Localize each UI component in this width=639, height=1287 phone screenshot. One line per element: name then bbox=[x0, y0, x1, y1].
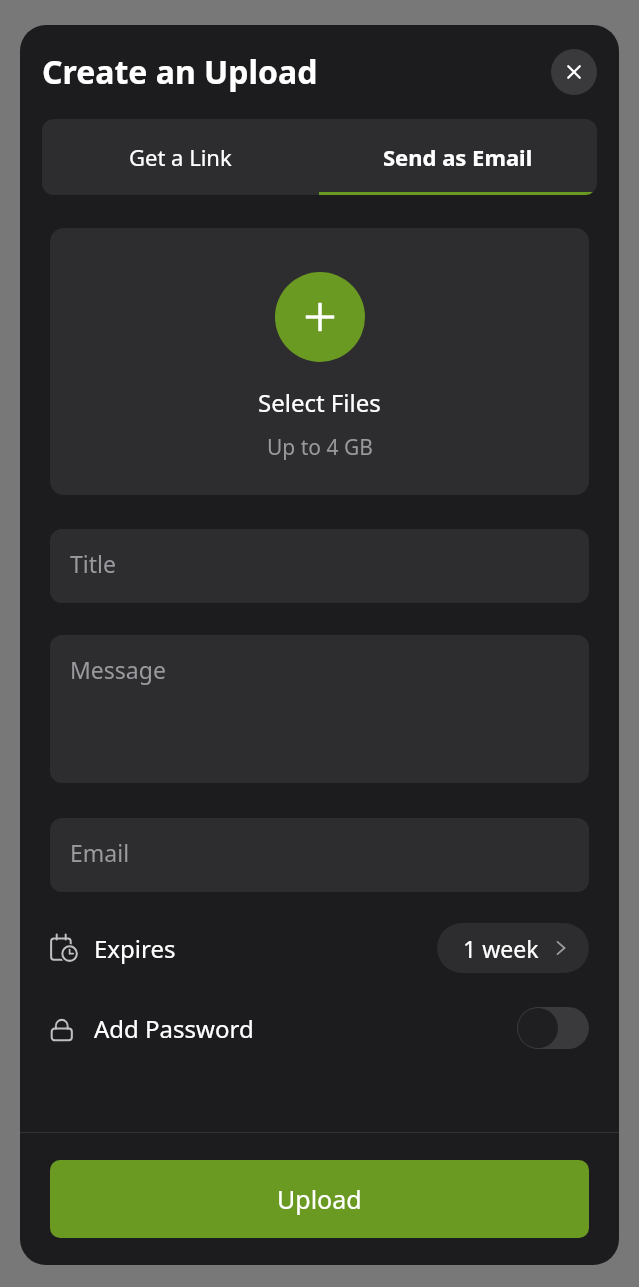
staticText: Message bbox=[70, 654, 166, 685]
button[interactable]: Upload bbox=[50, 1160, 589, 1238]
button[interactable]: Get a Link bbox=[42, 119, 319, 195]
staticText: Email bbox=[70, 837, 130, 868]
staticText: 1 week bbox=[463, 933, 539, 964]
staticText: Add Password bbox=[94, 1012, 254, 1045]
button[interactable]: Title bbox=[50, 529, 589, 603]
staticText: Send as Email bbox=[383, 142, 533, 172]
staticText: Upload bbox=[277, 1182, 362, 1216]
button[interactable]: Select Files bbox=[50, 228, 589, 495]
staticText: Expires bbox=[94, 932, 176, 965]
button[interactable]: Message bbox=[50, 635, 589, 783]
button[interactable]: 1 week bbox=[437, 923, 589, 973]
staticText: Get a Link bbox=[129, 142, 232, 172]
staticText: Title bbox=[70, 548, 116, 579]
button[interactable]: Add Password bbox=[20, 994, 619, 1062]
button[interactable]: Send as Email bbox=[319, 119, 597, 195]
button[interactable]: Expires bbox=[20, 914, 619, 982]
button[interactable]: Add Password toggle bbox=[517, 1007, 589, 1049]
button[interactable]: Close bbox=[551, 49, 597, 95]
staticText: Up to 4 GB bbox=[267, 433, 373, 462]
staticText: Create an Upload bbox=[42, 50, 318, 94]
button[interactable]: Email bbox=[50, 818, 589, 892]
staticText: Select Files bbox=[258, 386, 381, 419]
